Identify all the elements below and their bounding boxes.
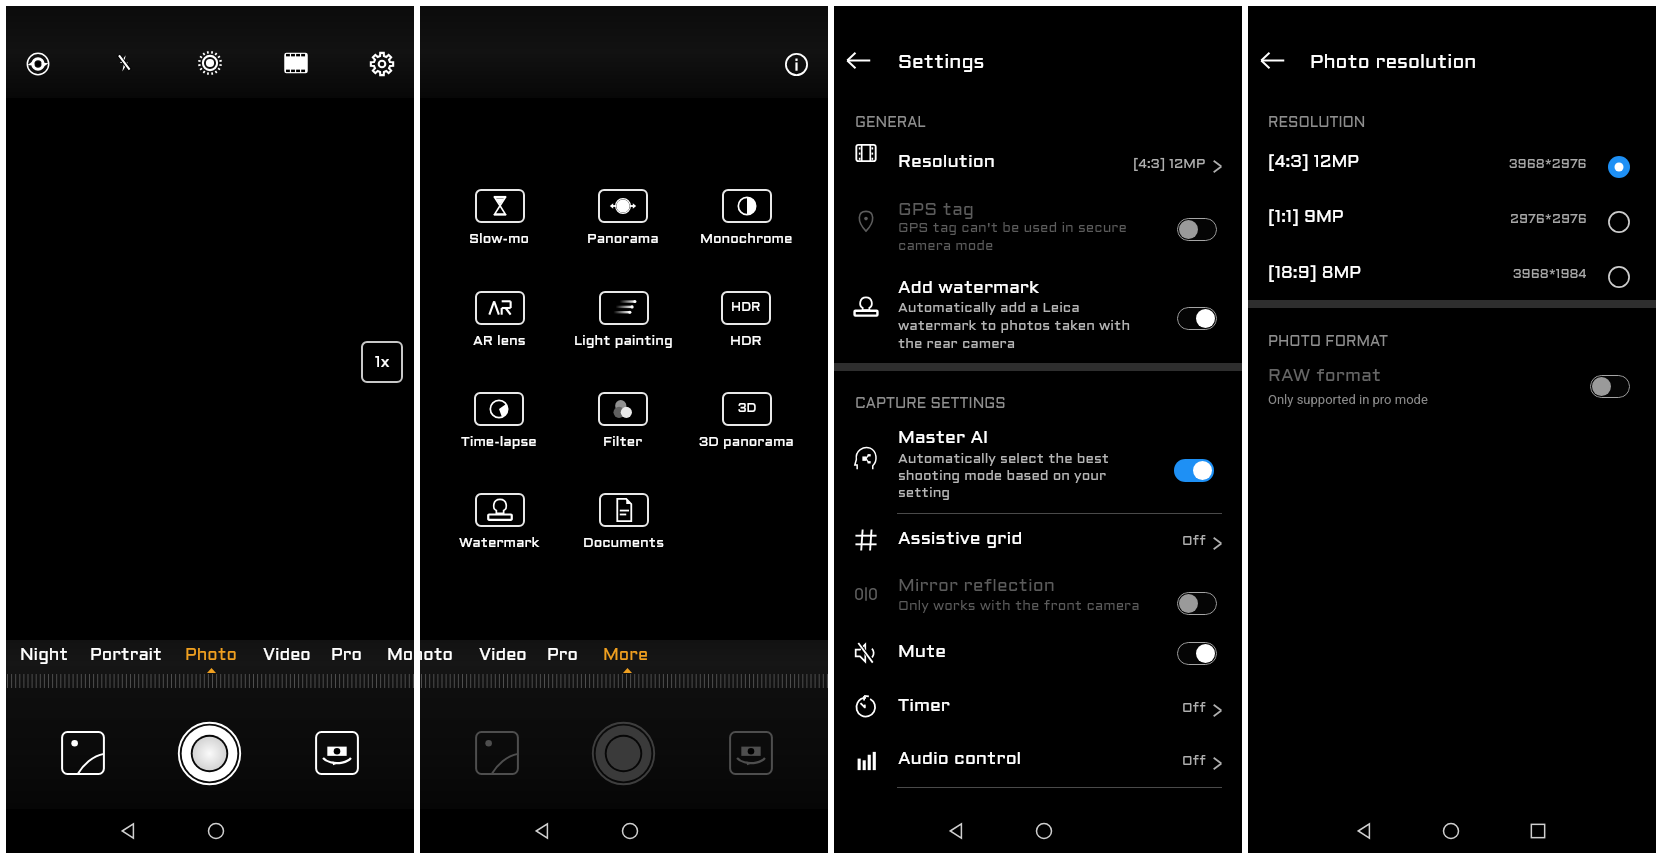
staticText: Documents [583,537,664,550]
button[interactable]: Documents [563,493,683,565]
staticText: Panorama [587,233,659,246]
button[interactable]: Flash off [103,42,145,84]
button[interactable] [254,640,320,674]
staticText: Only works with the front camera [898,600,1140,613]
button[interactable] [322,640,370,674]
staticText: Only supported in pro mode [1268,392,1428,407]
button[interactable]: Back [936,811,976,851]
staticText: [4:3] 12MP [1268,155,1360,171]
button[interactable]: Shutter [592,722,655,785]
staticText: PHOTO FORMAT [1268,336,1388,349]
staticText: Time-lapse [461,436,537,449]
staticText: 3D [738,403,757,415]
staticText: Automatically select the best shooting m… [898,453,1110,500]
staticText: Filter [603,436,643,449]
staticText: Timer [898,698,950,715]
staticText: Night [20,648,69,664]
button[interactable]: Monochrome [686,189,806,261]
button[interactable] [378,640,414,674]
staticText: HDR [731,302,761,314]
staticText: Assistive grid [898,531,1023,548]
button[interactable]: Recents [1518,811,1558,851]
button[interactable]: Selected [1608,156,1630,178]
button[interactable]: Zoom 1x [361,341,403,383]
button[interactable] [834,424,1242,512]
button[interactable] [176,640,246,674]
button[interactable]: Back [522,811,562,851]
button[interactable]: Add watermark toggle [1177,307,1217,330]
button[interactable] [11,640,77,674]
button[interactable]: GPS tag toggle [1177,218,1217,241]
button[interactable]: Shutter [178,722,241,785]
button[interactable]: Light painting [563,291,683,363]
staticText: [4:3] 12MP [1133,158,1206,171]
button[interactable] [834,514,1242,566]
button[interactable]: Film filter [275,42,317,84]
button[interactable]: Back [108,811,148,851]
button[interactable]: Time-lapse [439,392,559,464]
button[interactable]: Gallery [475,731,519,775]
button[interactable] [1248,260,1656,315]
staticText: Photo resolution [1310,54,1477,72]
staticText: More [387,648,414,664]
button[interactable] [834,734,1242,788]
staticText: Video [479,648,527,664]
staticText: Pro [331,648,362,664]
staticText: GPS tag can't be used in secure camera m… [898,222,1127,253]
button[interactable]: Panorama [563,189,683,261]
staticText: Audio control [898,751,1022,768]
button[interactable]: 3D [686,392,806,464]
staticText: Resolution [898,154,995,171]
button[interactable]: Master AI toggle [1174,459,1214,482]
button[interactable]: Switch camera [729,731,773,775]
staticText: Master AI [898,430,989,447]
button[interactable] [1248,149,1656,204]
button[interactable]: Mirror reflection toggle [1177,592,1217,615]
button[interactable]: Home [610,811,650,851]
button[interactable]: Back [1254,42,1290,78]
button[interactable]: Filter [563,392,683,464]
staticText: More [603,648,649,664]
button[interactable]: AR lens [439,291,559,363]
button[interactable]: Back [1344,811,1384,851]
staticText: Add watermark [898,280,1039,297]
button[interactable] [420,640,462,674]
button[interactable]: RAW format toggle [1590,375,1630,398]
button[interactable] [470,640,536,674]
staticText: 3968*1984 [1513,269,1587,281]
button[interactable] [834,681,1242,735]
button[interactable]: Info [777,45,815,83]
staticText: Mute [898,644,947,661]
button[interactable]: Mute toggle [1177,642,1217,665]
button[interactable] [1248,204,1656,259]
staticText: [18:9] 8MP [1268,266,1362,282]
button[interactable] [834,143,1242,187]
button[interactable]: Settings [361,43,403,85]
button[interactable]: Smart assistant [17,43,59,85]
button[interactable] [538,640,586,674]
button[interactable]: Slow-mo [439,189,559,261]
button[interactable]: Not selected [1608,266,1630,288]
button[interactable]: Watermark [439,493,559,565]
button[interactable] [834,196,1242,266]
button[interactable] [834,626,1242,680]
button[interactable]: Home [196,811,236,851]
staticText: Slow-mo [469,233,530,246]
button[interactable] [594,640,660,674]
staticText: GPS tag [898,202,974,219]
staticText: AR lens [473,335,526,348]
button[interactable] [834,566,1242,620]
button[interactable]: Not selected [1608,211,1630,233]
button[interactable] [81,640,176,674]
button[interactable]: Colour mode [189,42,231,84]
button[interactable] [1248,361,1656,415]
button[interactable]: HDR [686,291,806,363]
button[interactable]: Home [1431,811,1471,851]
button[interactable] [834,274,1242,360]
button[interactable]: Back [840,42,876,78]
button[interactable]: Gallery [61,731,105,775]
button[interactable]: Home [1024,811,1064,851]
button[interactable]: Switch camera [315,731,359,775]
staticText: RESOLUTION [1268,117,1366,130]
staticText: GENERAL [855,117,926,130]
